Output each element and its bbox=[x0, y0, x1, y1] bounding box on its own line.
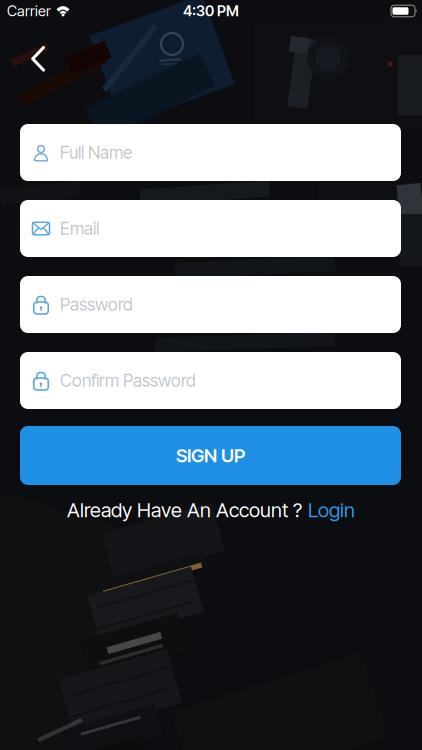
staticText: SIGN UP bbox=[176, 444, 245, 466]
button[interactable]: Email bbox=[20, 200, 401, 257]
button[interactable]: Full Name bbox=[20, 124, 401, 181]
staticText: Confirm Password bbox=[60, 370, 196, 391]
button[interactable]: Back bbox=[16, 37, 60, 81]
staticText: Full Name bbox=[60, 142, 132, 163]
staticText: Carrier bbox=[7, 2, 51, 20]
button[interactable]: SIGN UP bbox=[20, 426, 401, 485]
staticText: 4:30 PM bbox=[183, 2, 239, 20]
staticText: Already Have An Account ? bbox=[67, 498, 302, 522]
button[interactable]: Confirm Password bbox=[20, 352, 401, 409]
staticText: Login bbox=[308, 498, 355, 522]
staticText: Email bbox=[60, 218, 99, 239]
button[interactable]: Password bbox=[20, 276, 401, 333]
button[interactable]: Login bbox=[308, 498, 355, 522]
staticText: Password bbox=[60, 294, 133, 315]
